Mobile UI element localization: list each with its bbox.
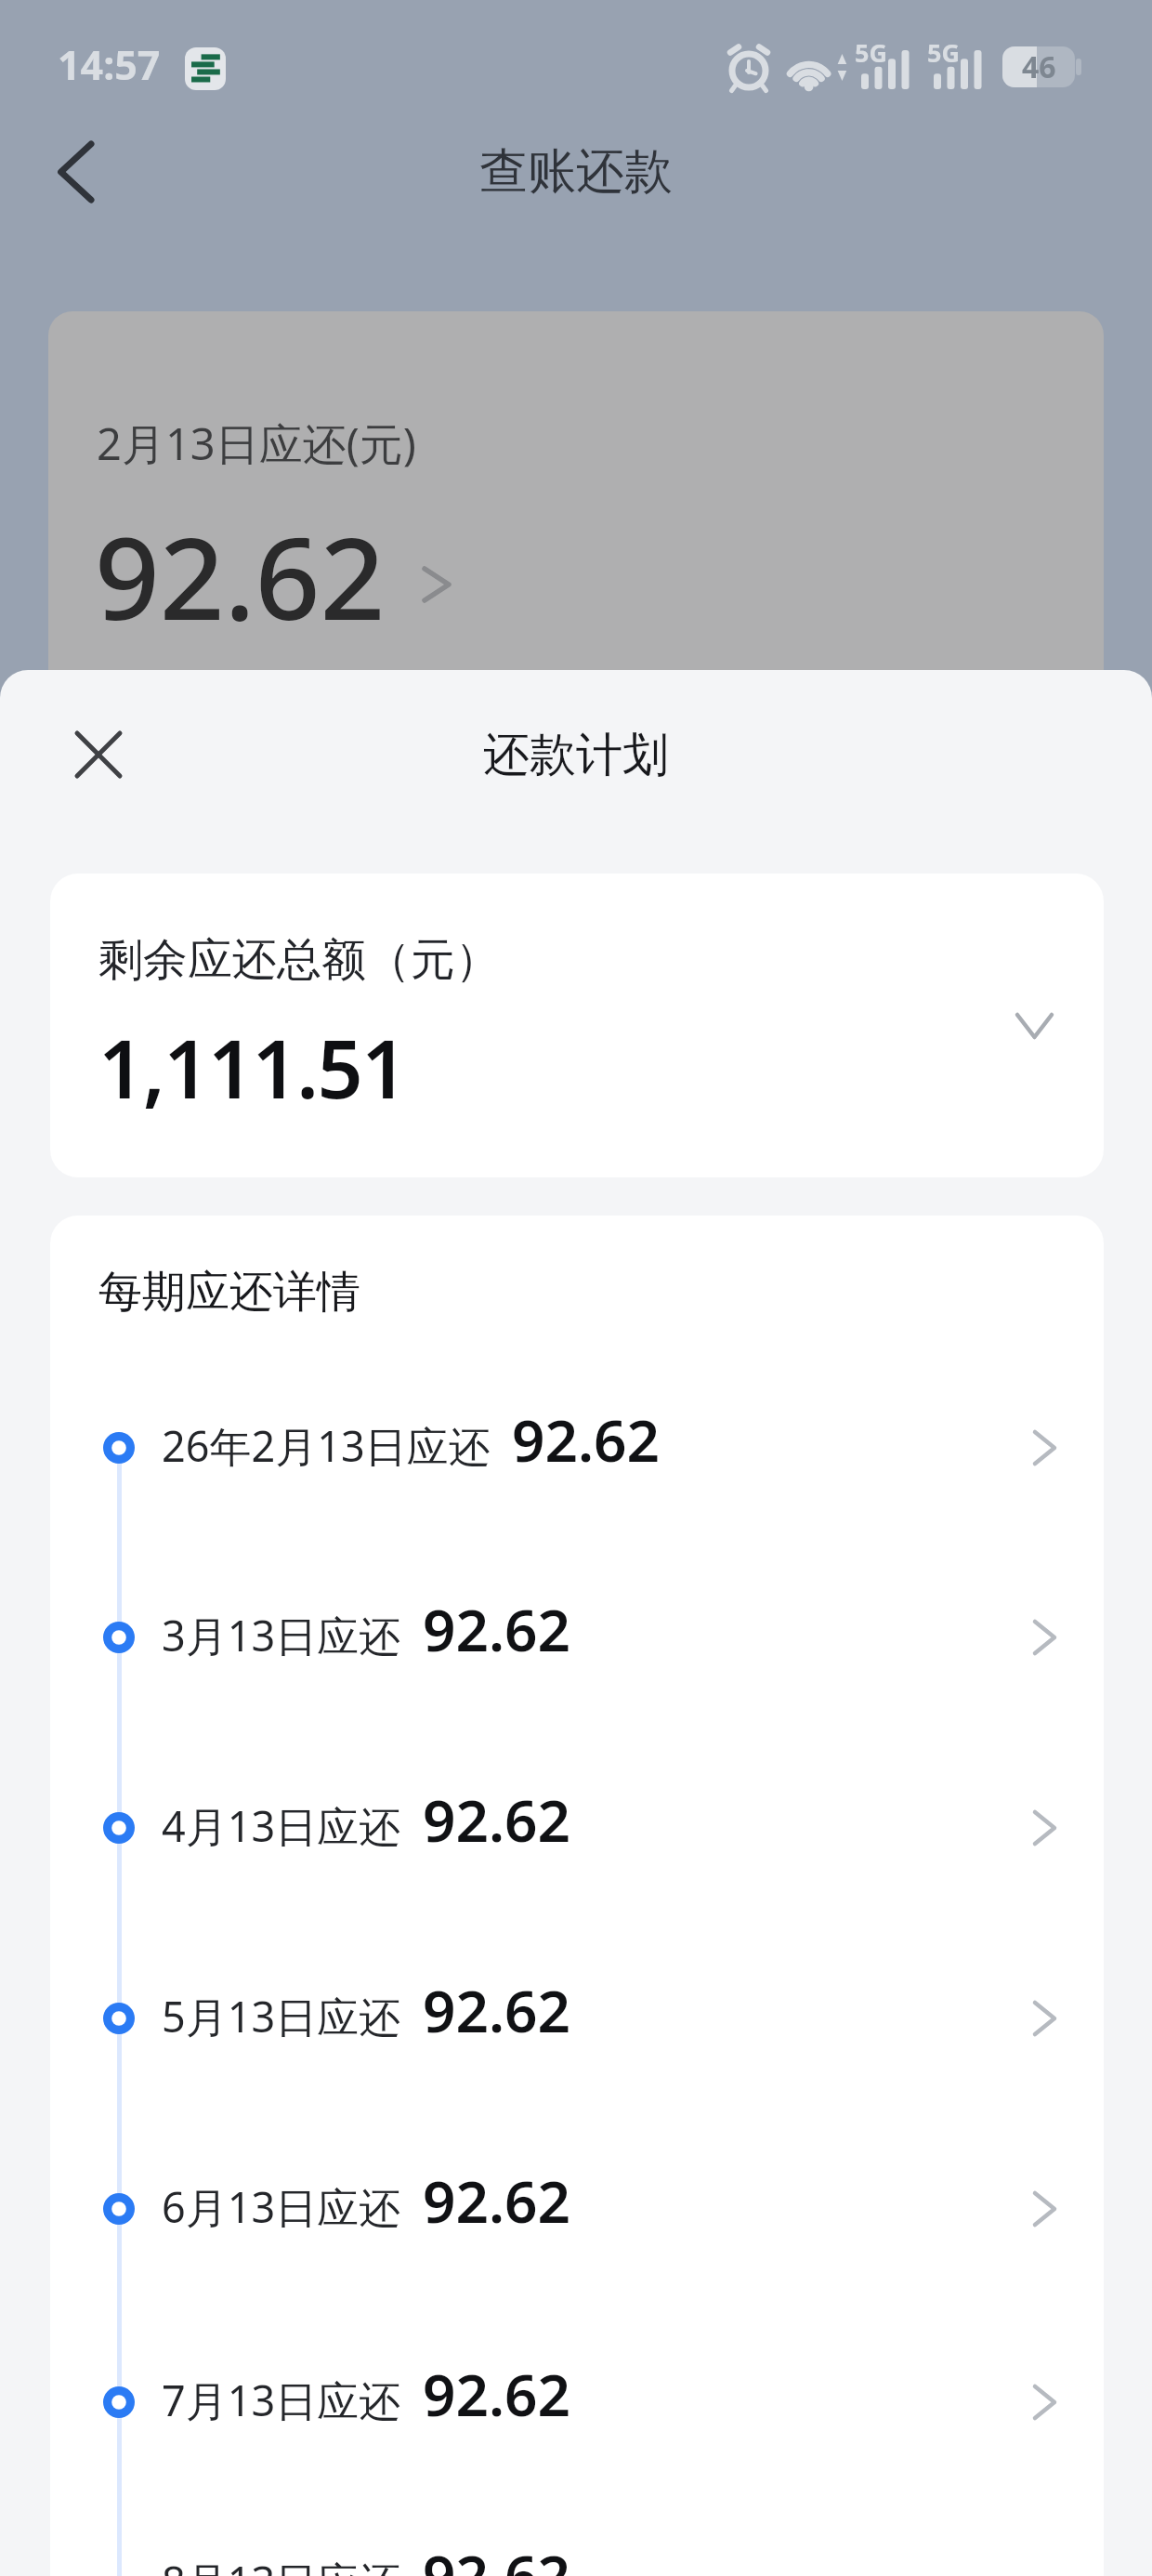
button[interactable]: [52, 708, 145, 801]
button[interactable]: 8月13日应还: [50, 2536, 1104, 2576]
button[interactable]: 3月13日应还: [50, 1590, 1104, 1685]
staticText: 3月13日应还: [162, 1607, 401, 1663]
staticText: 92.62: [423, 2162, 570, 2240]
staticText: 6月13日应还: [162, 2178, 401, 2235]
staticText: 92.62: [423, 1971, 570, 2049]
staticText: 92.62: [512, 1400, 660, 1479]
staticText: 剩余应还总额（元）: [98, 932, 500, 988]
button[interactable]: [28, 130, 121, 214]
button[interactable]: 6月13日应还: [50, 2162, 1104, 2256]
staticText: 14:57: [58, 37, 161, 92]
button[interactable]: 26年2月13日应还: [50, 1400, 1104, 1495]
button[interactable]: 5月13日应还: [50, 1971, 1104, 2066]
staticText: 92.62: [423, 1590, 570, 1668]
staticText: 26年2月13日应还: [162, 1417, 491, 1474]
button[interactable]: 7月13日应还: [50, 2355, 1104, 2450]
staticText: 每期应还详情: [98, 1265, 360, 1320]
staticText: 92.62: [423, 1781, 570, 1859]
button[interactable]: 剩余应还总额（元）: [50, 874, 1104, 1177]
staticText: 92.62: [95, 499, 386, 653]
staticText: 2月13日应还(元): [97, 414, 416, 473]
staticText: 46: [1022, 46, 1056, 87]
staticText: 5G: [855, 35, 887, 70]
staticText: 还款计划: [483, 726, 669, 784]
staticText: 5月13日应还: [162, 1988, 401, 2044]
staticText: 92.62: [423, 2355, 570, 2433]
button[interactable]: 4月13日应还: [50, 1781, 1104, 1875]
staticText: 7月13日应还: [162, 2372, 401, 2428]
staticText: 8月13日应还: [162, 2553, 401, 2576]
staticText: 92.62: [423, 2536, 570, 2576]
staticText: 1,111.51: [98, 1013, 406, 1122]
staticText: 查账还款: [479, 141, 673, 203]
staticText: 4月13日应还: [162, 1797, 401, 1854]
staticText: 5G: [927, 35, 960, 70]
